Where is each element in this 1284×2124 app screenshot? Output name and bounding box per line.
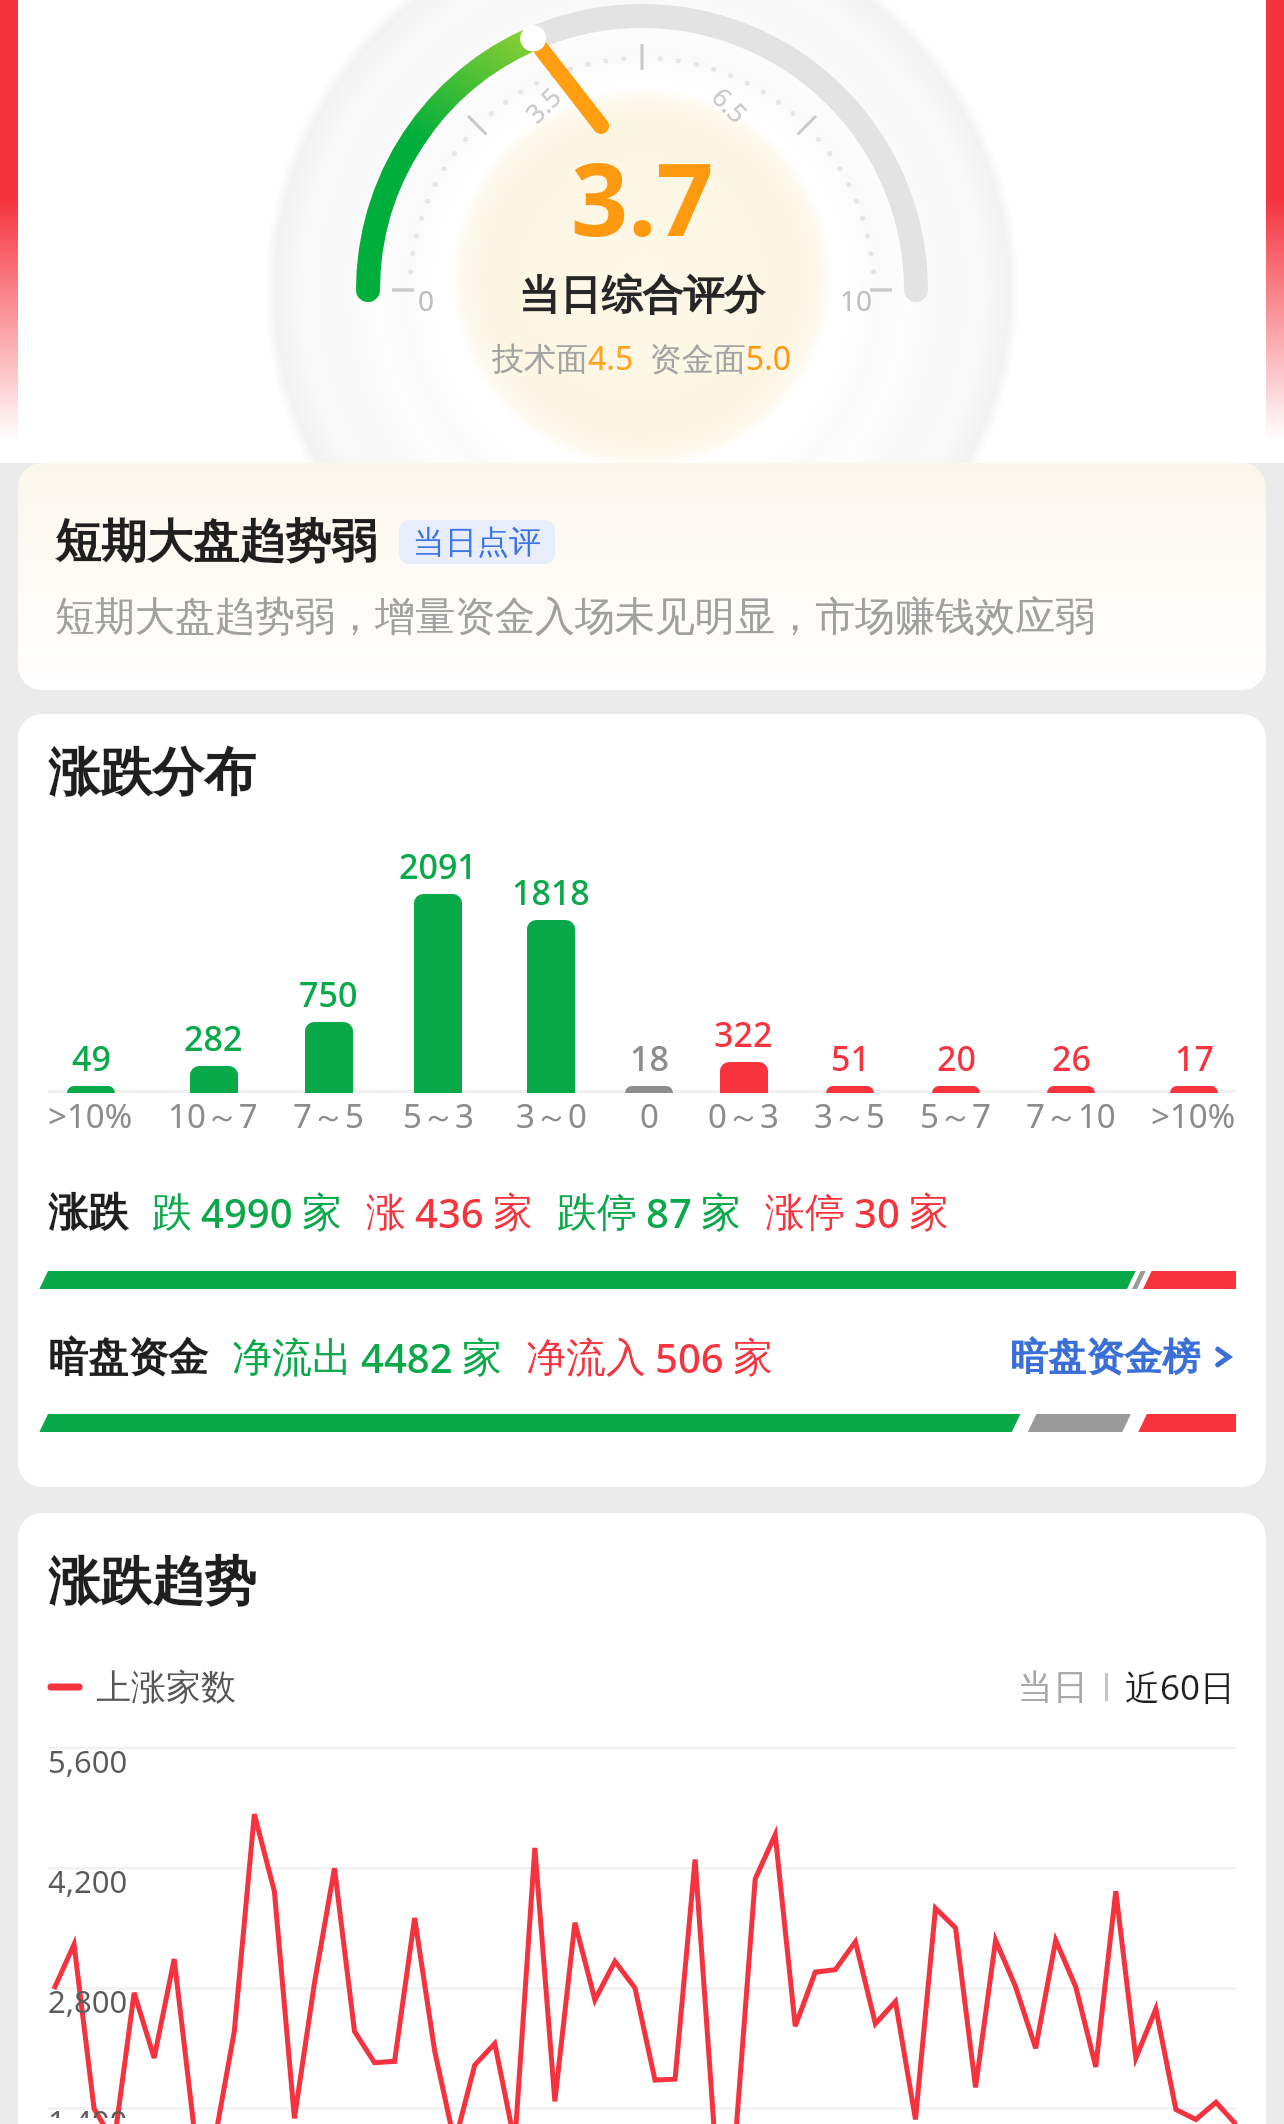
button[interactable]: 短期大盘趋势弱 [18,463,1266,690]
staticText: 1,400 [48,2100,128,2118]
staticText: 4990 [201,1185,293,1239]
staticText: 家 [493,1187,533,1237]
staticText: >10% [48,1093,133,1138]
staticText: 涨跌分布 [48,740,256,806]
staticText: 5～7 [920,1093,991,1138]
staticText: 17 [1175,1035,1214,1081]
staticText: 当日点评 [413,522,541,562]
staticText: 涨跌趋势 [48,1549,256,1615]
staticText: 跌停 [557,1187,637,1237]
staticText: 7～10 [1026,1093,1116,1138]
staticText: 10～7 [168,1093,258,1138]
staticText: 3～5 [814,1093,885,1138]
staticText: >10% [1151,1093,1236,1138]
staticText: 暗盘资金榜 [1010,1333,1200,1381]
staticText: 2091 [399,843,477,889]
staticText: 净流出 [232,1332,352,1382]
staticText: 家 [302,1187,342,1237]
staticText: 7～5 [293,1093,364,1138]
staticText: 4,200 [48,1860,128,1902]
staticText: 20 [937,1035,976,1081]
staticText: 506 [655,1330,724,1384]
staticText: 3.5 [517,79,568,130]
staticText: 282 [184,1015,243,1061]
button[interactable]: 当日 [1018,1665,1088,1709]
staticText: 当日综合评分 [519,270,765,322]
button[interactable]: 近60日 [1125,1663,1236,1711]
button[interactable]: 暗盘资金榜 [1010,1333,1236,1381]
staticText: 436 [415,1185,484,1239]
staticText: 30 [854,1185,900,1239]
staticText: 18 [630,1035,669,1081]
staticText: 跌 [152,1187,192,1237]
staticText: 0 [418,281,435,319]
staticText: 涨 [366,1187,406,1237]
staticText: 10 [840,281,873,319]
staticText: 322 [714,1011,773,1057]
staticText: 涨跌 [48,1187,128,1237]
staticText: 6.5 [705,79,756,130]
staticText: 26 [1052,1035,1091,1081]
staticText: 家 [909,1187,949,1237]
staticText: 5～3 [403,1093,474,1138]
staticText: 1818 [512,869,590,915]
staticText: 短期大盘趋势弱 [55,513,377,571]
staticText: 750 [299,971,358,1017]
staticText: 2,800 [48,1980,128,2022]
staticText: 家 [733,1332,773,1382]
staticText: 暗盘资金 [48,1332,208,1382]
staticText: 上涨家数 [96,1665,236,1709]
staticText: 技术面4.5 资金面5.0 [492,336,792,380]
staticText: 3.7 [571,129,714,265]
staticText: 家 [701,1187,741,1237]
staticText: 短期大盘趋势弱，增量资金入场未见明显，市场赚钱效应弱 [55,591,1095,641]
staticText: 0 [640,1093,659,1138]
staticText: 4482 [361,1330,453,1384]
staticText: 涨停 [765,1187,845,1237]
staticText: 5,600 [48,1740,128,1782]
staticText: 49 [72,1035,111,1081]
staticText: 87 [646,1185,692,1239]
staticText: 51 [831,1035,870,1081]
staticText: 3～0 [516,1093,587,1138]
staticText: 家 [462,1332,502,1382]
staticText: 0～3 [708,1093,779,1138]
staticText: 净流入 [526,1332,646,1382]
